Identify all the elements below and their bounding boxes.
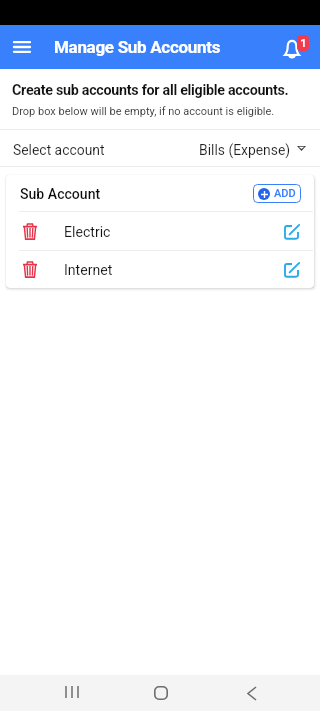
staticText: Create sub accounts for all eligible acc… — [12, 82, 289, 99]
button[interactable]: Edit Electric — [275, 212, 311, 250]
staticText: ADD — [274, 187, 296, 200]
staticText: Sub Account — [20, 186, 101, 203]
button[interactable]: Select account — [0, 130, 320, 166]
button[interactable]: Delete Internet — [6, 251, 314, 288]
button[interactable]: Recents — [52, 674, 92, 710]
button[interactable]: Delete Electric — [6, 212, 314, 250]
staticText: Select account — [13, 142, 105, 158]
button[interactable]: Delete Internet — [6, 251, 50, 288]
button[interactable]: ADD — [253, 184, 301, 203]
staticText: Electric — [64, 224, 111, 241]
button[interactable]: Edit Internet — [275, 251, 311, 288]
staticText: Manage Sub Accounts — [54, 37, 221, 57]
staticText: Drop box below will be empty, if no acco… — [12, 105, 275, 118]
staticText: Internet — [64, 262, 113, 279]
button[interactable]: Menu — [0, 25, 44, 69]
staticText: 1 — [300, 37, 307, 50]
button[interactable]: Back — [232, 675, 272, 711]
button[interactable]: Delete Electric — [6, 212, 50, 250]
button[interactable]: Notifications — [272, 25, 320, 69]
button[interactable]: Home — [141, 675, 181, 711]
staticText: Bills (Expense) — [199, 142, 291, 158]
